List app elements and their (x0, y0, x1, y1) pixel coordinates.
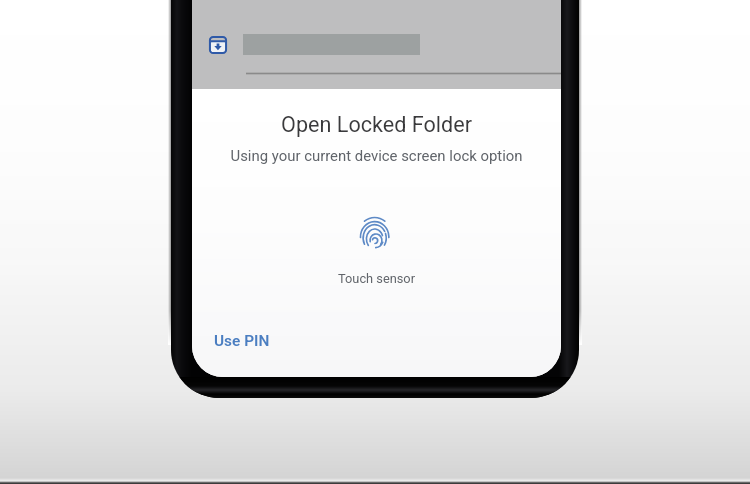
staticText: Using your current device screen lock op… (192, 147, 561, 164)
staticText: Open Locked Folder (192, 112, 561, 137)
button[interactable]: Fingerprint sensor (358, 215, 391, 253)
staticText: Use PIN (214, 332, 270, 350)
staticText: Touch sensor (192, 271, 561, 286)
button[interactable]: Use PIN (202, 325, 282, 357)
